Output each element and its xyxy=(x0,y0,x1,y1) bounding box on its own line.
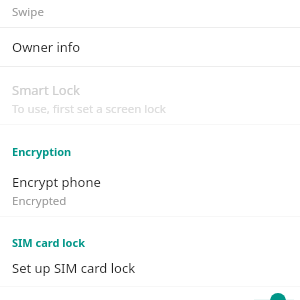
button[interactable]: Smart Lock xyxy=(0,67,300,124)
staticText: Encrypted xyxy=(12,193,67,209)
staticText: Smart Lock xyxy=(12,81,80,99)
button[interactable]: Make passwords visible toggle xyxy=(270,293,286,300)
staticText: Encrypt phone xyxy=(12,173,101,191)
staticText: Owner info xyxy=(12,38,81,56)
staticText: Swipe xyxy=(12,4,44,20)
staticText: Set up SIM card lock xyxy=(12,259,136,277)
staticText: Encryption xyxy=(12,144,72,159)
button[interactable]: Set up SIM card lock xyxy=(0,250,300,286)
staticText: SIM card lock xyxy=(12,235,85,250)
staticText: To use, first set a screen lock xyxy=(12,101,166,117)
button[interactable]: Swipe xyxy=(0,4,300,20)
button[interactable]: Encrypt phone xyxy=(0,159,300,216)
button[interactable]: Owner info xyxy=(0,28,300,66)
